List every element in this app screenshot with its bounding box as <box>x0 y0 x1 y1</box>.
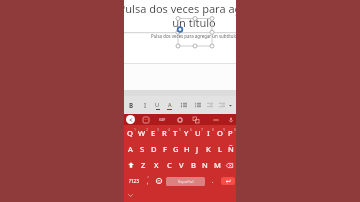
staticText: H <box>184 144 190 154</box>
button[interactable]: V <box>175 157 187 173</box>
staticText: Z <box>141 160 146 170</box>
button[interactable]: C <box>163 157 175 173</box>
staticText: Q <box>127 128 133 138</box>
button[interactable]: P <box>225 125 236 141</box>
staticText: I <box>207 128 210 138</box>
staticText: R <box>162 128 167 138</box>
staticText: 6 <box>190 127 192 132</box>
button[interactable]: A <box>124 141 136 157</box>
staticText: 2 <box>146 127 148 132</box>
staticText: 5 <box>179 127 181 132</box>
button[interactable]: Z <box>137 157 150 173</box>
button[interactable]: Bold <box>126 96 136 114</box>
button[interactable]: Numbered list <box>193 96 203 114</box>
staticText: C <box>167 160 172 170</box>
button[interactable]: Stickers <box>141 114 150 125</box>
staticText: 7 <box>201 127 203 132</box>
staticText: W <box>138 128 146 138</box>
staticText: T <box>173 128 178 138</box>
button[interactable]: Underline <box>152 96 162 114</box>
button[interactable]: I <box>203 125 214 141</box>
staticText: N <box>202 160 208 170</box>
staticText: Pulsa dos veces para agregar un título <box>124 1 236 31</box>
button[interactable]: L <box>214 141 225 157</box>
staticText: 9 <box>223 127 225 132</box>
button[interactable]: Enter <box>221 177 235 185</box>
button[interactable]: D <box>148 141 159 157</box>
button[interactable]: W <box>136 125 148 141</box>
button[interactable]: Y <box>181 125 192 141</box>
button[interactable]: Decrease indent <box>205 96 215 114</box>
button[interactable]: X <box>150 157 163 173</box>
staticText: S <box>140 144 145 154</box>
button[interactable]: Comma <box>143 173 153 189</box>
button[interactable]: H <box>181 141 192 157</box>
staticText: 3 <box>157 127 159 132</box>
staticText: 1 <box>134 127 136 132</box>
button[interactable]: R <box>159 125 170 141</box>
button[interactable]: E <box>148 125 159 141</box>
button[interactable]: S <box>136 141 148 157</box>
staticText: J <box>196 144 199 154</box>
staticText: Y <box>184 128 189 138</box>
button[interactable]: G <box>170 141 181 157</box>
staticText: D <box>151 144 157 154</box>
button[interactable]: J <box>192 141 203 157</box>
staticText: B <box>191 160 196 170</box>
button[interactable]: Italic <box>140 96 150 114</box>
button[interactable]: B <box>187 157 199 173</box>
staticText: O <box>217 128 223 138</box>
button[interactable]: More formatting <box>225 96 235 114</box>
button[interactable]: Symbols <box>124 173 143 189</box>
staticText: Ñ <box>228 144 234 154</box>
button[interactable]: K <box>203 141 214 157</box>
staticText: K <box>206 144 211 154</box>
staticText: ?123 <box>129 178 139 184</box>
staticText: X <box>154 160 159 170</box>
staticText: E <box>151 128 156 138</box>
staticText: 4 <box>168 127 170 132</box>
button[interactable]: T <box>170 125 181 141</box>
button[interactable]: Ñ <box>225 141 236 157</box>
button[interactable]: Emoji <box>153 173 164 189</box>
staticText: Español <box>178 179 194 185</box>
button[interactable]: F <box>159 141 170 157</box>
button[interactable]: More options <box>211 114 220 125</box>
button[interactable]: Period <box>205 173 221 189</box>
button[interactable]: Shift <box>124 157 137 173</box>
staticText: , <box>147 179 149 186</box>
button[interactable]: U <box>192 125 203 141</box>
staticText: U <box>155 101 160 109</box>
button[interactable]: Keyboard settings <box>175 114 184 125</box>
staticText: L <box>218 144 222 154</box>
button[interactable]: M <box>211 157 223 173</box>
staticText: 0 <box>234 127 236 132</box>
staticText: Pulsa dos veces para agregar un subtítul… <box>151 33 236 39</box>
button[interactable]: Back <box>126 115 135 124</box>
staticText: I <box>144 101 147 109</box>
button[interactable]: Backspace <box>223 157 236 173</box>
staticText: 8 <box>212 127 214 132</box>
button[interactable]: Text colour <box>164 96 174 114</box>
button[interactable]: O <box>214 125 225 141</box>
staticText: F <box>163 144 167 154</box>
staticText: GIF <box>159 117 166 122</box>
staticText: G <box>173 144 179 154</box>
staticText: P <box>228 128 233 138</box>
button[interactable]: Increase indent <box>217 96 227 114</box>
button[interactable]: Voice input <box>226 114 235 125</box>
button[interactable]: Translate <box>191 114 200 125</box>
staticText: A <box>168 101 172 109</box>
staticText: . <box>212 178 214 185</box>
button[interactable]: Q <box>124 125 136 141</box>
staticText: B <box>129 101 134 109</box>
button[interactable]: GIF <box>158 114 167 125</box>
button[interactable]: N <box>199 157 211 173</box>
staticText: V <box>179 160 184 170</box>
button[interactable]: Bulleted list <box>179 96 189 114</box>
button[interactable]: Space <box>166 177 205 186</box>
staticText: M <box>214 160 221 170</box>
staticText: U <box>195 128 201 138</box>
staticText: A <box>128 144 133 154</box>
